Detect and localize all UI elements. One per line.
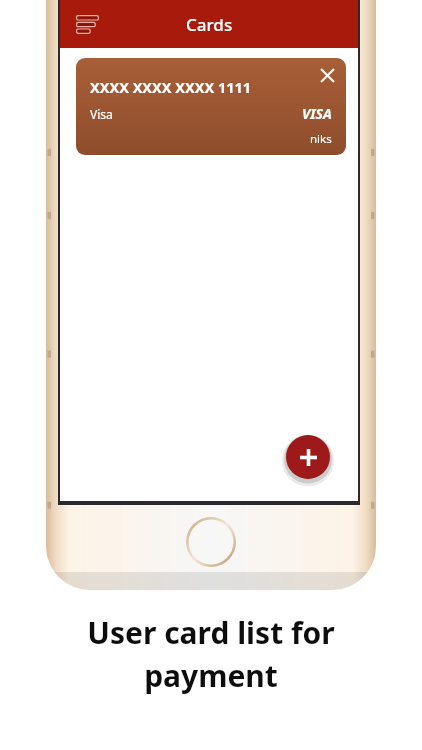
staticText: XXXX XXXX XXXX 1111: [90, 77, 252, 97]
staticText: niks: [310, 131, 332, 147]
button[interactable]: Remove card: [312, 60, 342, 90]
staticText: Cards: [186, 13, 233, 36]
staticText: VISA: [302, 104, 332, 123]
button[interactable]: Add card: [286, 435, 330, 479]
staticText: Visa: [90, 106, 113, 122]
button[interactable]: Home: [186, 517, 236, 567]
button[interactable]: Remove card: [76, 58, 346, 155]
staticText: User card list for payment: [87, 612, 335, 696]
button[interactable]: Open navigation menu: [68, 5, 106, 43]
